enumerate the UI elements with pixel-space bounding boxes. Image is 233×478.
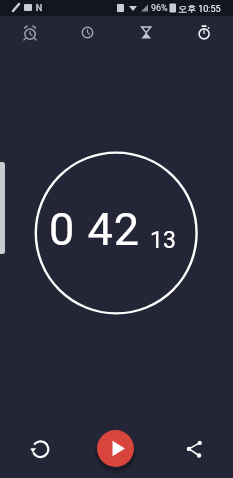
staticText: 13 [150,227,176,254]
button[interactable] [97,430,134,467]
button[interactable] [0,16,59,49]
button[interactable] [23,431,59,467]
button[interactable] [59,16,117,49]
button[interactable] [175,16,233,49]
staticText: 96% [151,3,168,14]
staticText: 오후 10:55 [178,3,221,14]
button[interactable] [117,16,175,49]
button[interactable] [177,432,213,468]
staticText: 0 42 [49,203,141,256]
